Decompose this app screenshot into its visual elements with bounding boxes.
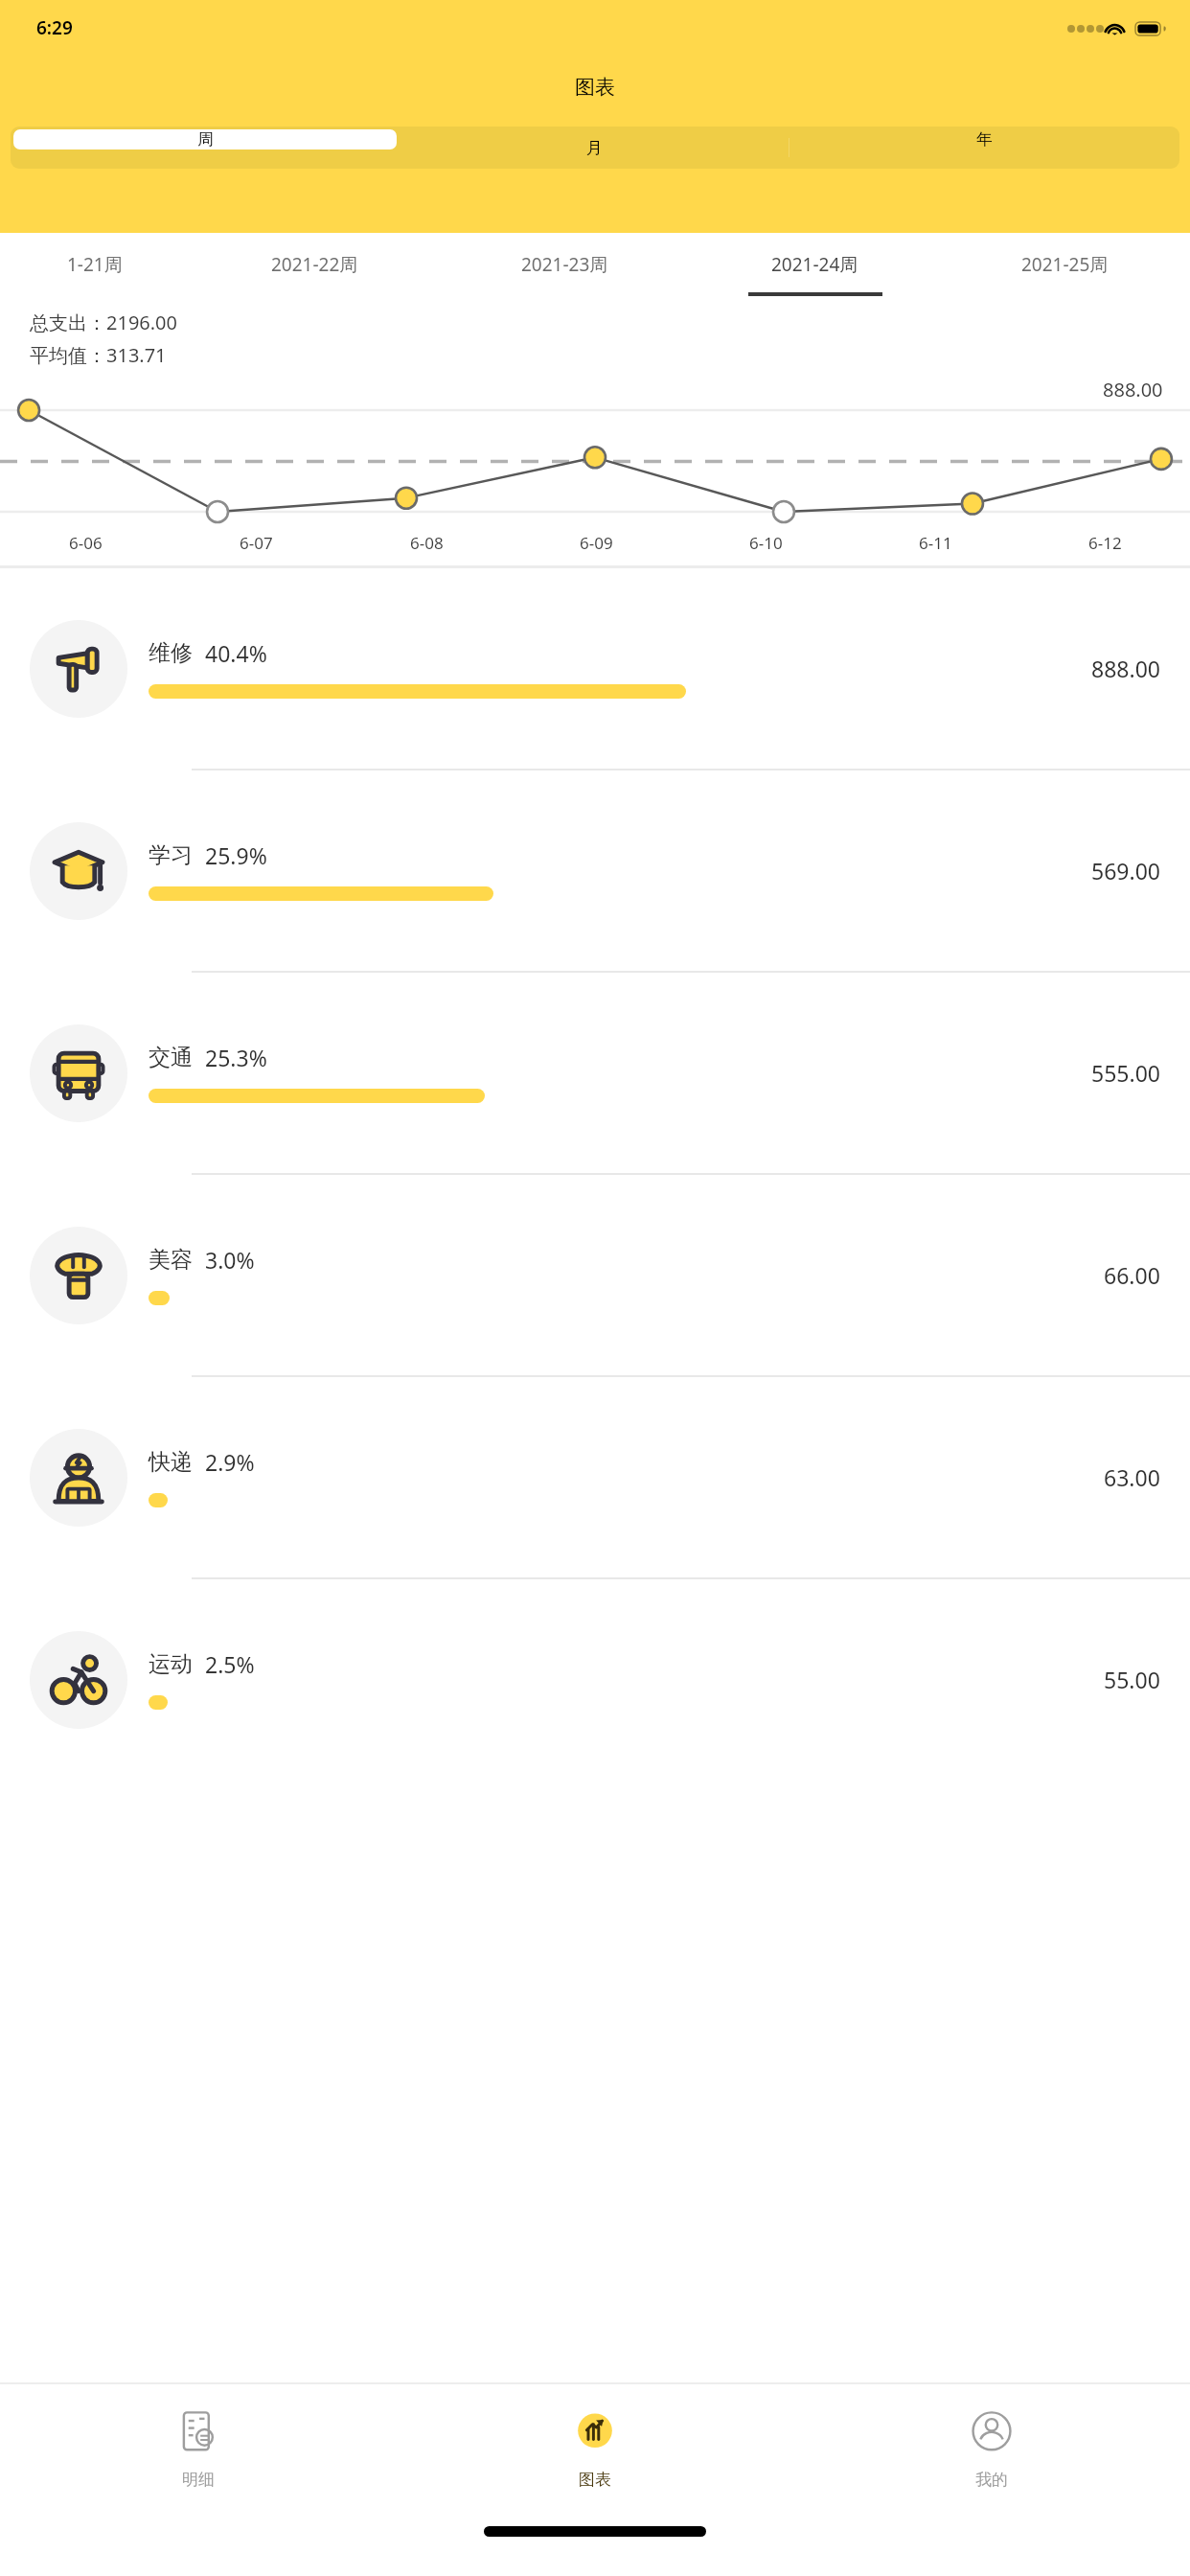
staticText: 6-08 [410, 532, 444, 554]
staticText: 6-09 [580, 532, 613, 554]
staticText: 6:29 [36, 15, 73, 40]
staticText: 年 [976, 129, 993, 149]
staticText: 569.00 [1091, 856, 1160, 885]
staticText: 总支出：2196.00 [30, 310, 177, 335]
button[interactable]: 学习 [0, 770, 1190, 971]
staticText: 888.00 [1091, 654, 1160, 683]
staticText: 平均值：313.71 [30, 342, 167, 368]
button[interactable]: 快递 [0, 1377, 1190, 1577]
staticText: 6-12 [1088, 532, 1122, 554]
button[interactable]: 运动 [0, 1579, 1190, 1780]
staticText: 63.00 [1104, 1462, 1160, 1492]
button[interactable]: 明细 [0, 2384, 397, 2526]
button[interactable]: 交通 [0, 973, 1190, 1173]
staticText: 2021-23周 [521, 252, 608, 277]
button[interactable]: 1-21周 [0, 233, 190, 296]
staticText: 1-21周 [67, 252, 123, 277]
button[interactable]: 年 [792, 129, 1177, 149]
button[interactable]: 美容 [0, 1175, 1190, 1375]
staticText: 美容 [149, 1246, 193, 1274]
button[interactable]: 图表 [397, 2384, 793, 2526]
staticText: 6-07 [240, 532, 273, 554]
staticText: 888.00 [1103, 377, 1163, 402]
button[interactable]: 2021-22周 [190, 233, 440, 296]
staticText: 6-06 [69, 532, 103, 554]
button[interactable]: 2021-25周 [940, 233, 1190, 296]
button[interactable]: 月 [402, 129, 787, 166]
staticText: 40.4% [205, 638, 267, 668]
staticText: 6-11 [919, 532, 952, 554]
staticText: 25.9% [205, 840, 267, 870]
staticText: 2021-22周 [271, 252, 358, 277]
staticText: 快递 [149, 1448, 193, 1476]
staticText: 图表 [579, 2470, 611, 2490]
staticText: 6-10 [749, 532, 783, 554]
button[interactable]: 2021-24周 [690, 233, 940, 296]
button[interactable]: 我的 [793, 2384, 1190, 2526]
staticText: 55.00 [1104, 1665, 1160, 1694]
staticText: 3.0% [205, 1245, 255, 1275]
staticText: 2.5% [205, 1649, 255, 1679]
staticText: 2.9% [205, 1447, 255, 1477]
staticText: 月 [586, 138, 603, 158]
staticText: 交通 [149, 1044, 193, 1071]
staticText: 学习 [149, 841, 193, 869]
button[interactable]: 周 [13, 129, 397, 149]
staticText: 图表 [575, 75, 615, 100]
staticText: 25.3% [205, 1043, 267, 1072]
staticText: 66.00 [1104, 1260, 1160, 1290]
button[interactable]: 2021-23周 [440, 233, 690, 296]
staticText: 周 [197, 129, 214, 149]
staticText: 维修 [149, 639, 193, 667]
staticText: 555.00 [1091, 1058, 1160, 1088]
staticText: 我的 [975, 2470, 1008, 2490]
staticText: 明细 [182, 2470, 215, 2490]
button[interactable]: 维修 [0, 568, 1190, 769]
staticText: 2021-25周 [1021, 252, 1109, 277]
staticText: 运动 [149, 1650, 193, 1678]
staticText: 2021-24周 [771, 252, 858, 277]
